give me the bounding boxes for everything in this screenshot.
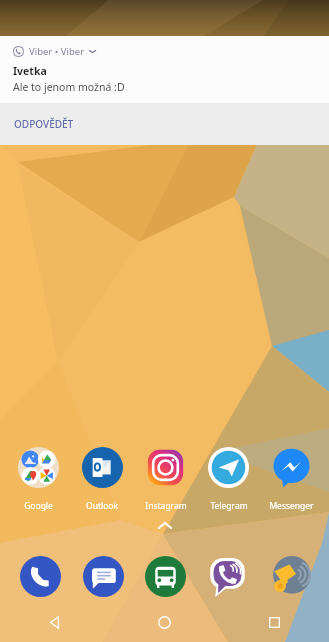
other: App drawer [157, 521, 173, 530]
button[interactable]: Phone [9, 556, 72, 597]
button[interactable]: Home [109, 602, 219, 642]
staticText: Ivetka [13, 64, 47, 78]
other: Telegram [208, 447, 249, 488]
staticText: Telegram [210, 500, 248, 512]
button[interactable]: ODPOVĚDĚT [0, 103, 329, 145]
button[interactable]: Back [0, 602, 109, 642]
button[interactable]: Transit [134, 556, 196, 597]
button[interactable]: Outlook [70, 447, 134, 488]
staticText: Ale to jenom možná :D [13, 80, 125, 94]
other: Messages [83, 556, 124, 597]
staticText: Google [24, 500, 53, 512]
other: Instagram [145, 447, 186, 488]
button[interactable]: Recents [219, 602, 329, 642]
other: Google [18, 447, 59, 488]
other: Transit [145, 556, 186, 597]
other: Outlook [82, 447, 123, 488]
button[interactable]: Telegram [197, 447, 260, 488]
button[interactable]: Messenger [260, 447, 323, 488]
button[interactable]: Instagram [134, 447, 197, 488]
other: Viber [207, 556, 248, 597]
staticText: Outlook [86, 500, 118, 512]
staticText: ODPOVĚDĚT [14, 117, 74, 131]
button[interactable]: Google [6, 447, 70, 488]
button[interactable]: Messages [72, 556, 134, 597]
staticText: Viber • Viber [29, 45, 85, 58]
other: Messenger [271, 447, 312, 488]
button[interactable]: Viber [196, 556, 258, 597]
other: Audio [269, 556, 310, 597]
staticText: Instagram [145, 500, 187, 512]
staticText: Messenger [269, 500, 314, 512]
button[interactable]: Audio [258, 556, 320, 597]
button[interactable]: Viber • Viber [0, 36, 329, 103]
other: Phone [20, 556, 61, 597]
